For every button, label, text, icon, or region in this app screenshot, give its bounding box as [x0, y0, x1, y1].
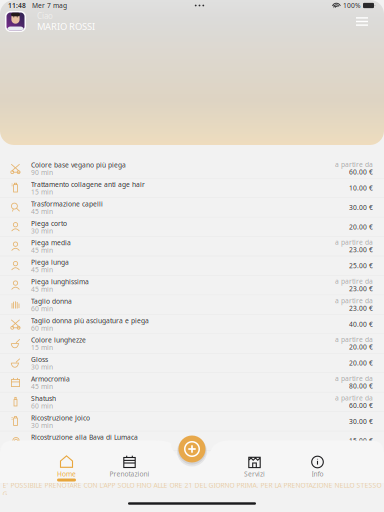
staticText: 60 min	[31, 304, 53, 313]
button[interactable]: Ricostruzione Joico	[0, 412, 384, 431]
button[interactable]: Prenotazioni	[98, 451, 161, 484]
staticText: 23.00 €	[349, 245, 373, 254]
staticText: 30 min	[31, 362, 53, 371]
button[interactable]: Shatush	[0, 392, 384, 412]
staticText: Ricostruzione alla Bava di Lumaca	[31, 433, 138, 442]
staticText: a partire da	[335, 160, 373, 169]
button[interactable]: Colore base vegano più piega	[0, 159, 384, 178]
staticText: 30.00 €	[349, 203, 373, 212]
button[interactable]: Servizi	[223, 451, 286, 484]
staticText: Prenotazioni	[109, 470, 149, 478]
staticText: 100%	[343, 1, 361, 10]
staticText: 20.00 €	[349, 358, 373, 367]
staticText: a partire da	[335, 393, 373, 402]
staticText: 60 min	[31, 324, 53, 332]
staticText: Taglio donna più asciugatura e piega	[31, 316, 149, 325]
button[interactable]: Ricostruzione alla Bava di Lumaca	[0, 431, 384, 451]
button[interactable]: Piega media	[0, 237, 384, 256]
staticText: Armocromia	[31, 374, 70, 383]
button[interactable]: Piega corto	[0, 217, 384, 237]
staticText: Ciao	[37, 11, 53, 21]
staticText: Piega lunghissima	[31, 277, 89, 286]
button[interactable]: Info	[286, 451, 349, 484]
staticText: 90 min	[31, 168, 53, 177]
staticText: Piega lunga	[31, 258, 69, 267]
staticText: E' POSSIBILE PRENOTARE CON L'APP SOLO FI…	[2, 481, 381, 498]
staticText: 40.00 €	[349, 320, 373, 328]
staticText: 60.00 €	[349, 401, 373, 410]
button[interactable]: Gloss	[0, 353, 384, 373]
staticText: a partire da	[335, 374, 373, 383]
button[interactable]: Armocromia	[0, 373, 384, 392]
staticText: Piega media	[31, 238, 71, 247]
staticText: 15.00 €	[349, 436, 373, 445]
staticText: Ricostruzione Joico	[31, 413, 90, 422]
staticText: Trattamento collagene anti age hair	[31, 180, 145, 189]
staticText: 10.00 €	[349, 183, 373, 192]
staticText: Shatush	[31, 394, 56, 403]
staticText: a partire da	[335, 238, 373, 247]
staticText: 45 min	[31, 246, 53, 255]
button[interactable]: Piega lunga	[0, 256, 384, 276]
staticText: Piega corto	[31, 219, 67, 228]
staticText: 60 min	[31, 401, 53, 410]
staticText: 45 min	[31, 285, 53, 294]
staticText: 80.00 €	[349, 381, 373, 390]
staticText: 20.00 €	[349, 222, 373, 231]
staticText: 15 min	[31, 187, 53, 196]
staticText: Info	[311, 470, 323, 478]
staticText: Colore lunghezze	[31, 336, 86, 344]
staticText: 30.00 €	[349, 417, 373, 426]
staticText: 23.00 €	[349, 284, 373, 293]
staticText: 60.00 €	[349, 167, 373, 176]
staticText: Home	[57, 470, 76, 478]
staticText: 15 min	[31, 343, 53, 352]
staticText: 20.00 €	[349, 343, 373, 351]
button[interactable]: Nuova prenotazione	[176, 433, 208, 465]
staticText: a partire da	[335, 296, 373, 305]
staticText: 45 min	[31, 265, 53, 274]
staticText: 45 min	[31, 382, 53, 391]
staticText: 25.00 €	[349, 261, 373, 270]
button[interactable]: Trattamento collagene anti age hair	[0, 178, 384, 198]
staticText: 30 min	[31, 421, 53, 430]
staticText: Gloss	[31, 355, 48, 364]
staticText: 11:48	[8, 1, 26, 10]
staticText: 30 min	[31, 226, 53, 235]
staticText: Trasformazione capelli	[31, 199, 103, 208]
staticText: MARIO ROSSI	[37, 20, 95, 33]
staticText: a partire da	[335, 277, 373, 286]
staticText: Colore base vegano più piega	[31, 160, 126, 169]
button[interactable]: Colore lunghezze	[0, 334, 384, 353]
staticText: 23.00 €	[349, 304, 373, 313]
staticText: Taglio donna	[31, 297, 72, 306]
staticText: Mer 7 mag	[26, 1, 67, 10]
button[interactable]: Trasformazione capelli	[0, 198, 384, 217]
staticText: a partire da	[335, 335, 373, 344]
button[interactable]: Piega lunghissima	[0, 276, 384, 295]
staticText: Servizi	[244, 470, 265, 478]
button[interactable]: Home	[35, 451, 98, 484]
button[interactable]: Menu	[351, 11, 373, 31]
button[interactable]: Taglio donna più asciugatura e piega	[0, 315, 384, 334]
button[interactable]: Taglio donna	[0, 295, 384, 314]
staticText: 45 min	[31, 207, 53, 216]
